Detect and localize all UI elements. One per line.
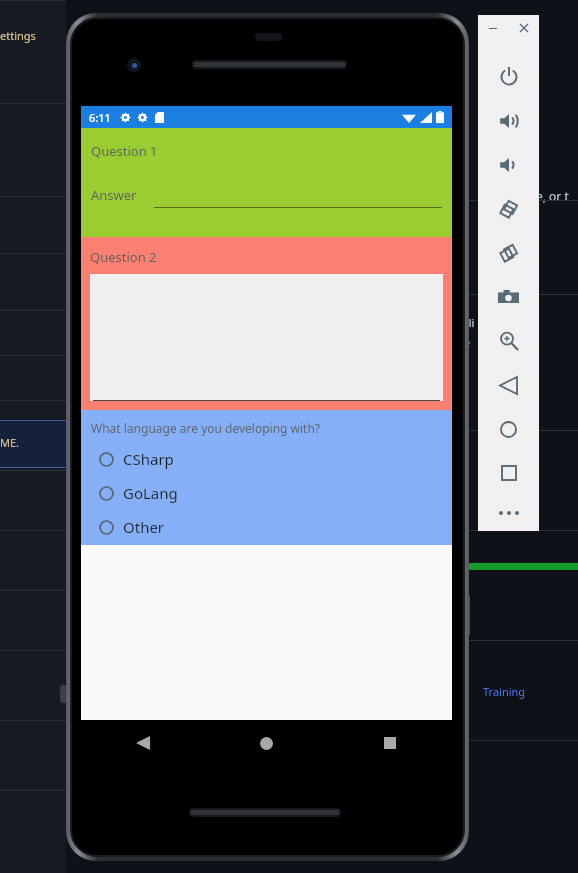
button[interactable]: Other — [91, 510, 452, 544]
staticText: ettings — [0, 28, 36, 43]
staticText: e, or t — [536, 188, 569, 204]
button[interactable]: Power — [478, 55, 539, 99]
button[interactable]: Back — [81, 720, 204, 766]
button[interactable]: Rotate left — [478, 187, 539, 231]
staticText: GoLang — [123, 483, 178, 503]
staticText: f — [462, 462, 466, 477]
staticText: ME. — [0, 435, 20, 450]
staticText: Question 1 — [91, 142, 158, 160]
button[interactable]: Close — [508, 15, 539, 41]
staticText: o — [462, 188, 470, 204]
button[interactable]: Recent apps — [328, 720, 452, 766]
button[interactable]: More — [478, 495, 539, 531]
button[interactable]: Home — [478, 407, 539, 451]
button[interactable]: Back — [478, 363, 539, 407]
button[interactable]: Overview — [478, 451, 539, 495]
button[interactable] — [154, 182, 442, 208]
button[interactable]: CSharp — [91, 442, 452, 476]
staticText: Question 2 — [90, 248, 157, 266]
staticText: What language are you developing with? — [91, 420, 321, 436]
button[interactable]: Minimize — [478, 15, 508, 41]
staticText: Training — [483, 684, 526, 699]
button[interactable]: Home — [204, 720, 328, 766]
staticText: t — [462, 445, 466, 460]
button[interactable]: Zoom — [478, 319, 539, 363]
button[interactable]: GoLang — [91, 476, 452, 510]
staticText: oli — [462, 315, 475, 330]
button[interactable]: Volume up — [478, 99, 539, 143]
button[interactable]: Volume down — [478, 143, 539, 187]
button[interactable]: Rotate right — [478, 231, 539, 275]
staticText: Answer — [91, 186, 137, 204]
staticText: Other — [123, 517, 165, 537]
button[interactable] — [90, 274, 443, 401]
staticText: 6:11 — [89, 110, 111, 125]
button[interactable]: Take screenshot — [478, 275, 539, 319]
staticText: le — [462, 335, 472, 350]
staticText: CSharp — [123, 449, 174, 469]
